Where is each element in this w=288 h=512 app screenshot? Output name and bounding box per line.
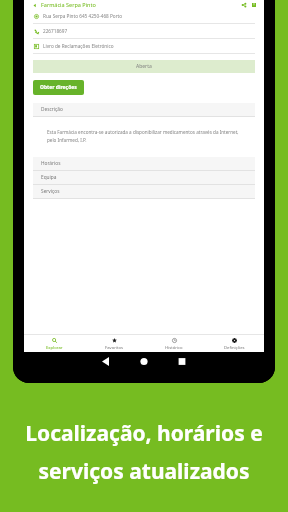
button[interactable]: Favoritos [250,1,258,9]
button[interactable]: Home [125,357,163,367]
staticText: Esta Farmácia encontra-se autorizada a d… [47,129,245,144]
staticText: Histórico [165,345,183,351]
staticText: Livro de Reclamações Eletrónico [43,43,114,49]
button[interactable]: Definições [204,335,264,352]
button[interactable]: Partilhar [240,1,248,9]
button[interactable]: Voltar [30,1,38,9]
button[interactable]: Descrição [33,103,255,116]
staticText: Farmácia Serpa Pinto [41,1,96,8]
button[interactable]: Horários [33,157,255,170]
button[interactable]: Serviços [33,185,255,198]
button[interactable]: Explorar [24,335,84,352]
button[interactable]: Histórico [144,335,204,352]
staticText: Aberta [136,63,152,70]
staticText: Equipa [41,174,57,181]
staticText: Rua Serpa Pinto 645 4250-468 Porto [43,13,123,19]
button[interactable]: Obter direções [33,80,84,95]
staticText: 226718697 [43,28,68,34]
staticText: Horários [41,160,61,167]
button[interactable]: Recents [163,357,201,367]
staticText: Localização, horários e [25,419,263,448]
staticText: Descrição [41,106,63,113]
staticText: Explorar [46,345,63,351]
button[interactable]: Equipa [33,171,255,184]
staticText: Serviços [41,188,60,195]
button[interactable]: Livro de Reclamações Eletrónico [24,39,264,53]
button[interactable]: Back [87,357,125,367]
button[interactable]: 226718697 [24,24,264,38]
staticText: Obter direções [40,84,77,91]
button[interactable]: Rua Serpa Pinto 645 4250-468 Porto [24,9,264,23]
staticText: Favoritos [105,345,124,351]
button[interactable]: Favoritos [84,335,144,352]
staticText: Definições [224,345,245,351]
staticText: serviços atualizados [38,457,250,486]
